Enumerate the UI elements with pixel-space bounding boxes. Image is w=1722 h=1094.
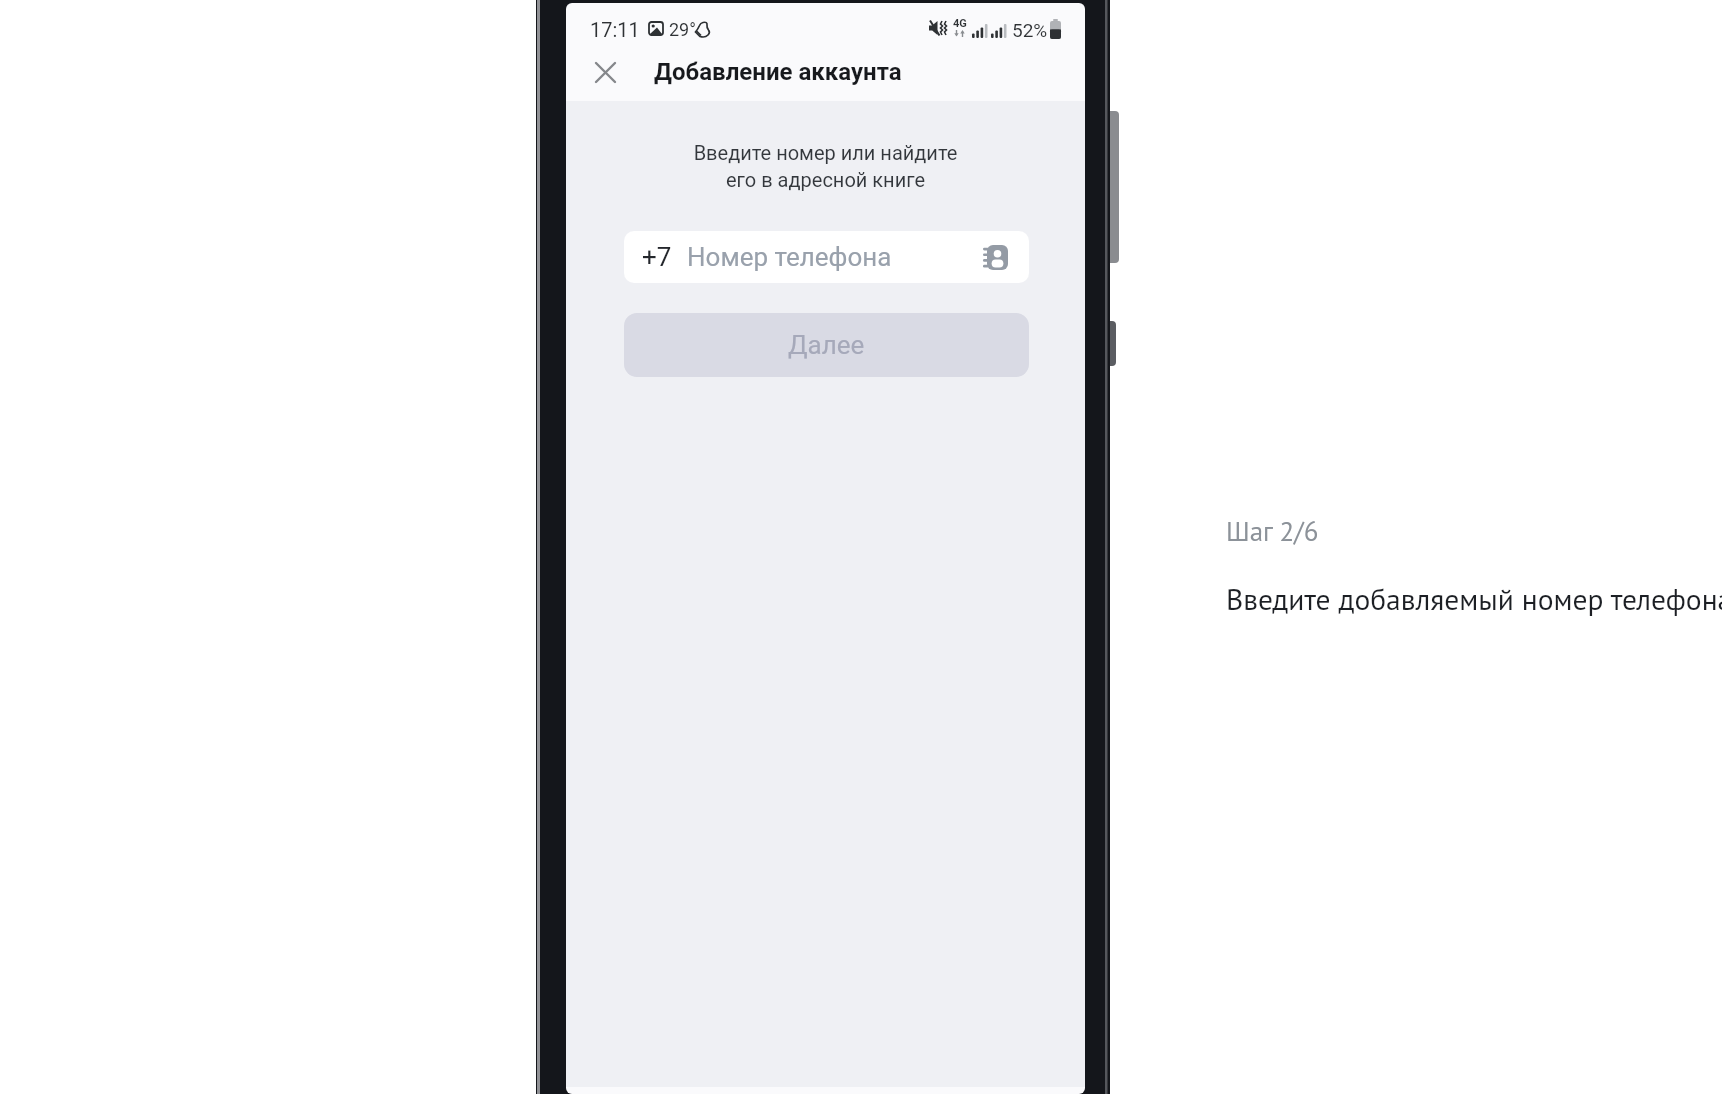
staticText: Введите добавляемый номер телефона xyxy=(1226,580,1722,618)
staticText: Номер телефона xyxy=(687,242,892,272)
staticText: 4G xyxy=(953,17,967,30)
staticText: Шаг 2/6 xyxy=(1226,514,1319,549)
button[interactable]: Далее xyxy=(624,313,1029,377)
staticText: 52% xyxy=(1012,19,1048,41)
staticText: 29° xyxy=(669,19,696,40)
button[interactable] xyxy=(585,52,625,92)
staticText: Далее xyxy=(788,330,865,360)
staticText: Добавление аккаунта xyxy=(654,58,902,86)
staticText: Введите номер или найдите его в адресной… xyxy=(566,141,1085,192)
button[interactable]: +7 xyxy=(624,231,1029,283)
staticText: 17:11 xyxy=(590,18,640,41)
staticText: +7 xyxy=(642,242,672,272)
button[interactable] xyxy=(983,245,1008,270)
